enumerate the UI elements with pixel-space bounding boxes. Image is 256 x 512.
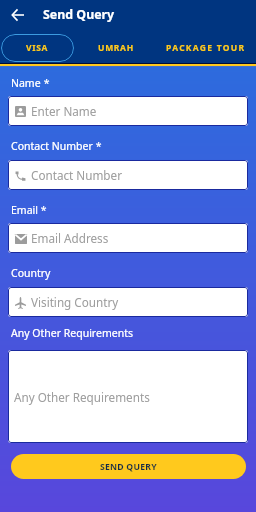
staticText: Name	[11, 76, 41, 90]
staticText: Contact Number	[31, 167, 122, 183]
button[interactable]: UMRAH	[82, 34, 149, 62]
button[interactable]: Email Address	[8, 223, 248, 253]
staticText: *	[93, 139, 102, 153]
staticText: Email Address	[31, 230, 109, 246]
button[interactable]: Any Other Requirements	[8, 350, 248, 443]
staticText: Enter Name	[31, 103, 97, 119]
button[interactable]: SEND QUERY	[11, 454, 246, 479]
staticText: Any Other Requirements	[14, 389, 150, 405]
button[interactable]: PACKAGE TOUR	[159, 34, 253, 62]
staticText: *	[38, 203, 47, 217]
button[interactable]: Visiting Country	[8, 287, 248, 317]
staticText: Email	[11, 203, 38, 217]
staticText: *	[41, 76, 50, 90]
staticText: Country	[11, 266, 51, 280]
staticText: Visiting Country	[31, 294, 119, 310]
staticText: UMRAH	[98, 42, 134, 54]
staticText: VISA	[26, 42, 49, 54]
staticText: Any Other Requirements	[11, 326, 133, 340]
button[interactable]: Contact Number	[8, 160, 248, 190]
staticText: PACKAGE TOUR	[166, 42, 246, 54]
staticText: Contact Number	[11, 139, 93, 153]
button[interactable]: Enter Name	[8, 96, 248, 126]
staticText: SEND QUERY	[100, 461, 157, 473]
button[interactable]: Back	[7, 4, 29, 26]
button[interactable]: VISA	[1, 34, 74, 62]
staticText: Send Query	[43, 6, 115, 23]
